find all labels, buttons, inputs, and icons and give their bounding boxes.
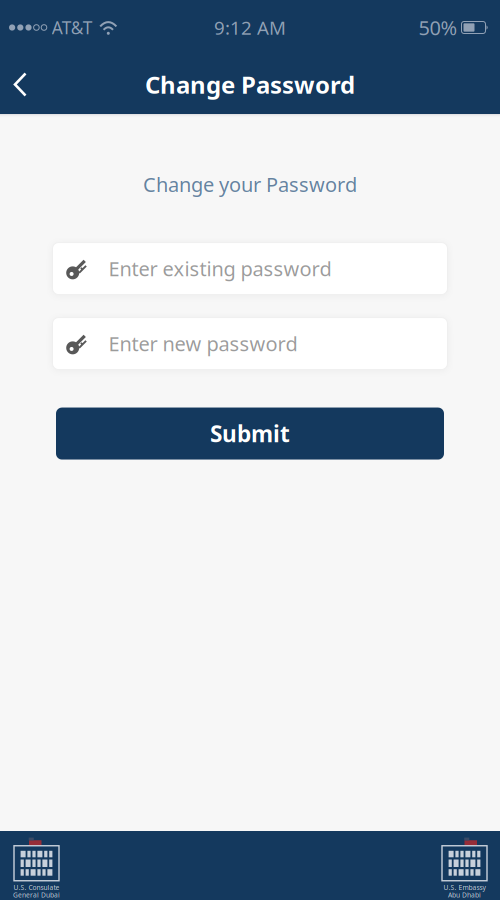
staticText: 9:12 AM bbox=[214, 15, 286, 40]
staticText: Submit bbox=[210, 418, 290, 449]
staticText: Change Password bbox=[145, 69, 355, 100]
staticText: 50% bbox=[418, 14, 457, 41]
button[interactable]: Enter existing password bbox=[52, 243, 447, 295]
button[interactable]: Submit bbox=[56, 408, 444, 460]
staticText: Enter new password bbox=[108, 330, 297, 357]
staticText: Change your Password bbox=[143, 171, 357, 198]
staticText: U.S. Consulate bbox=[13, 883, 59, 892]
staticText: Enter existing password bbox=[108, 255, 331, 282]
staticText: U.S. Embassy bbox=[443, 883, 485, 892]
button[interactable]: Back bbox=[0, 55, 43, 114]
button[interactable]: Enter new password bbox=[52, 318, 447, 370]
staticText: AT&T bbox=[52, 16, 93, 39]
staticText: Abu Dhabi bbox=[448, 891, 481, 899]
staticText: General Dubai bbox=[13, 891, 60, 899]
